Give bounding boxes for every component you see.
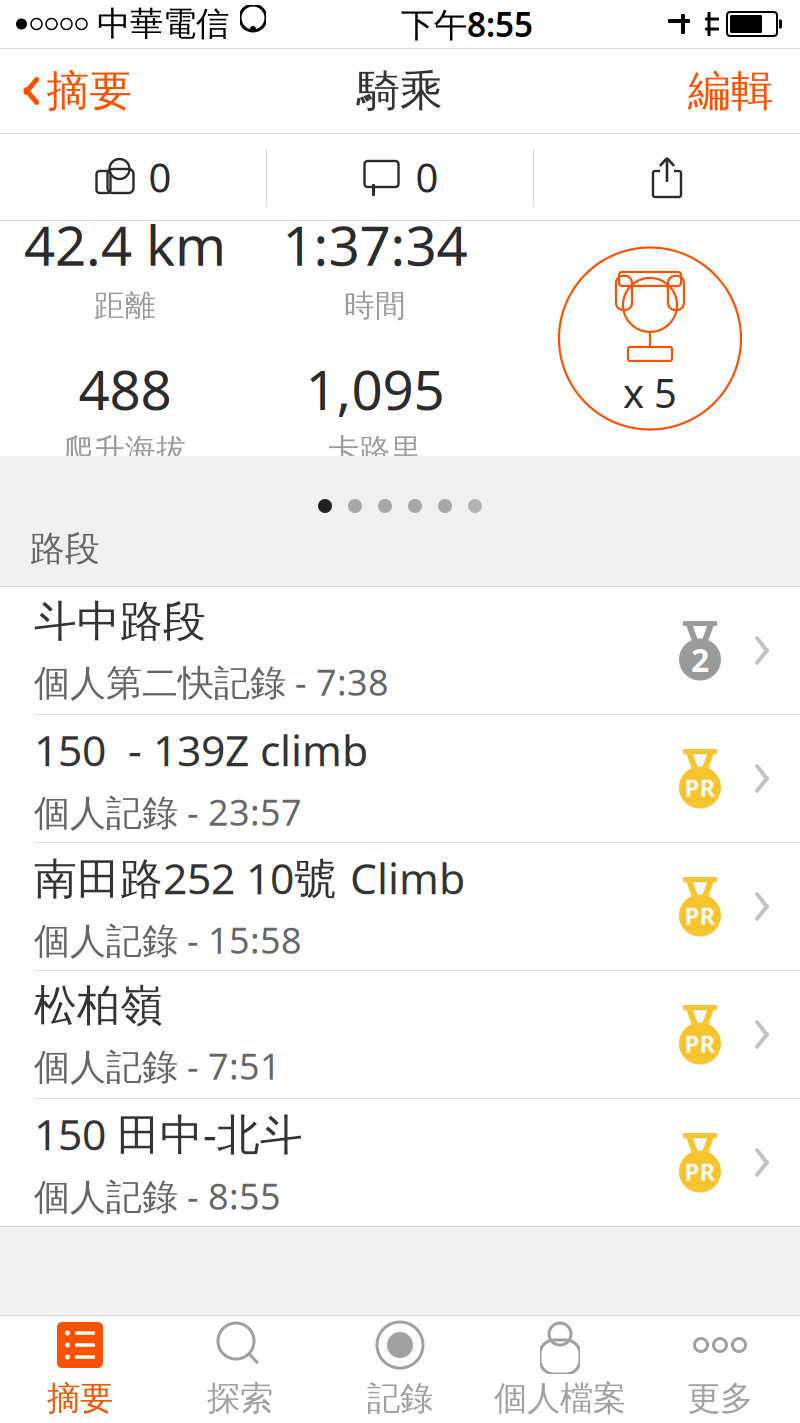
- staticText: 更多: [687, 1378, 753, 1419]
- staticText: 個人檔案: [494, 1378, 626, 1419]
- button[interactable]: 150 - 139Z climb: [0, 714, 800, 842]
- staticText: 個人記錄 - 15:58: [34, 916, 302, 964]
- button[interactable]: 更多: [640, 1316, 800, 1422]
- button[interactable]: 摘要: [0, 1316, 160, 1422]
- button[interactable]: 斗中路段: [0, 587, 800, 714]
- staticText: 騎乘: [357, 65, 443, 117]
- staticText: 1:37:34: [282, 208, 467, 281]
- staticText: PR: [684, 1028, 715, 1059]
- button[interactable]: Achievements, 5 trophies: [555, 243, 745, 433]
- button[interactable]: 編輯: [668, 55, 794, 127]
- staticText: 下午8:55: [401, 2, 533, 46]
- staticText: 488: [78, 352, 171, 425]
- button[interactable]: Comments: [267, 134, 533, 220]
- staticText: 0: [148, 150, 171, 203]
- staticText: PR: [684, 772, 715, 803]
- staticText: 南田路252 10號 Climb: [34, 849, 465, 906]
- staticText: 個人第二快記錄 - 7:38: [34, 658, 389, 706]
- button[interactable]: 摘要: [6, 55, 149, 127]
- staticText: 松柏嶺: [34, 979, 163, 1032]
- button[interactable]: 探索: [160, 1316, 320, 1422]
- staticText: 路段: [30, 527, 100, 570]
- staticText: 探索: [207, 1378, 273, 1419]
- staticText: 1,095: [305, 352, 444, 425]
- staticText: x 5: [623, 366, 677, 419]
- staticText: 距離: [94, 287, 156, 324]
- staticText: 個人記錄 - 23:57: [34, 788, 302, 836]
- button[interactable]: 記錄: [320, 1316, 480, 1422]
- staticText: 編輯: [688, 65, 774, 117]
- button[interactable]: 松柏嶺: [0, 970, 800, 1098]
- button[interactable]: Share: [534, 134, 800, 220]
- button[interactable]: 個人檔案: [480, 1316, 640, 1422]
- staticText: 摘要: [47, 1378, 113, 1419]
- staticText: 0: [415, 150, 438, 203]
- staticText: 摘要: [47, 65, 133, 117]
- staticText: 斗中路段: [34, 595, 206, 648]
- button[interactable]: Kudos: [0, 134, 266, 220]
- staticText: 42.4 km: [24, 208, 226, 281]
- staticText: 個人記錄 - 8:55: [34, 1172, 281, 1220]
- staticText: PR: [684, 1156, 715, 1187]
- staticText: 150 田中-北斗: [34, 1105, 303, 1162]
- staticText: 時間: [344, 287, 406, 324]
- button[interactable]: 150 田中-北斗: [0, 1098, 800, 1226]
- staticText: 爬升海拔: [63, 431, 187, 469]
- staticText: 中華電信: [97, 3, 229, 44]
- staticText: 個人記錄 - 7:51: [34, 1042, 281, 1090]
- button[interactable]: 南田路252 10號 Climb: [0, 842, 800, 970]
- staticText: 2: [691, 638, 709, 681]
- staticText: 卡路里: [328, 431, 421, 469]
- staticText: 記錄: [367, 1378, 433, 1419]
- staticText: 150 - 139Z climb: [34, 721, 368, 778]
- staticText: PR: [684, 900, 715, 931]
